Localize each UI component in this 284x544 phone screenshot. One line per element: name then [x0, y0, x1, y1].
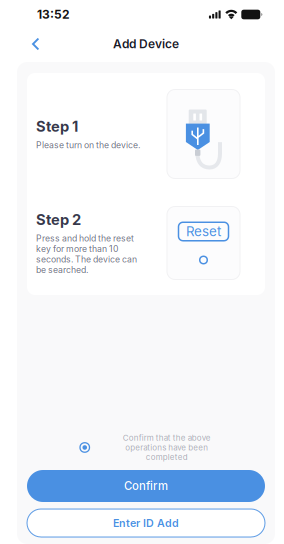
staticText: Confirm that the above operations have b… [122, 433, 210, 462]
button[interactable]: Confirm [27, 470, 265, 502]
staticText: Add Device [113, 37, 179, 51]
staticText: Step 1 [36, 118, 78, 135]
button[interactable]: Back [22, 30, 49, 58]
staticText: Step 2 [36, 211, 81, 229]
button[interactable]: Enter ID Add [27, 509, 265, 537]
button[interactable]: Confirm that the above operations have b… [80, 443, 89, 452]
staticText: Press and hold the reset key for more th… [36, 233, 137, 275]
staticText: Please turn on the device. [36, 140, 140, 150]
staticText: Confirm [124, 479, 168, 493]
staticText: Reset [186, 223, 221, 239]
staticText: 13:52 [37, 7, 70, 22]
staticText: Enter ID Add [113, 516, 179, 529]
